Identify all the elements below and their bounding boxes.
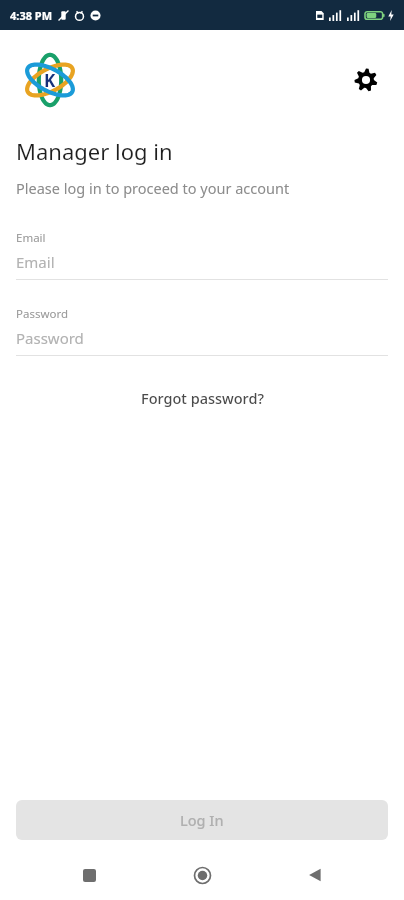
staticText: Email (16, 230, 46, 246)
staticText: Log In (180, 810, 224, 830)
button[interactable]: Forgot password? (129, 384, 276, 412)
button[interactable]: Back (291, 851, 339, 899)
button[interactable]: Log In (16, 800, 388, 840)
staticText: Email (16, 252, 55, 272)
staticText: Please log in to proceed to your account (16, 178, 290, 198)
staticText: 4:38 PM (10, 8, 53, 23)
staticText: Password (16, 306, 69, 322)
staticText: Forgot password? (141, 388, 264, 408)
staticText: Password (16, 328, 84, 348)
button[interactable]: Email (0, 230, 404, 280)
button[interactable]: Settings (346, 60, 386, 100)
button[interactable]: Home (178, 851, 226, 899)
staticText: Manager log in (16, 136, 173, 166)
staticText: K (44, 69, 56, 92)
button[interactable]: Recent apps (65, 851, 113, 899)
button[interactable]: Password (0, 306, 404, 356)
